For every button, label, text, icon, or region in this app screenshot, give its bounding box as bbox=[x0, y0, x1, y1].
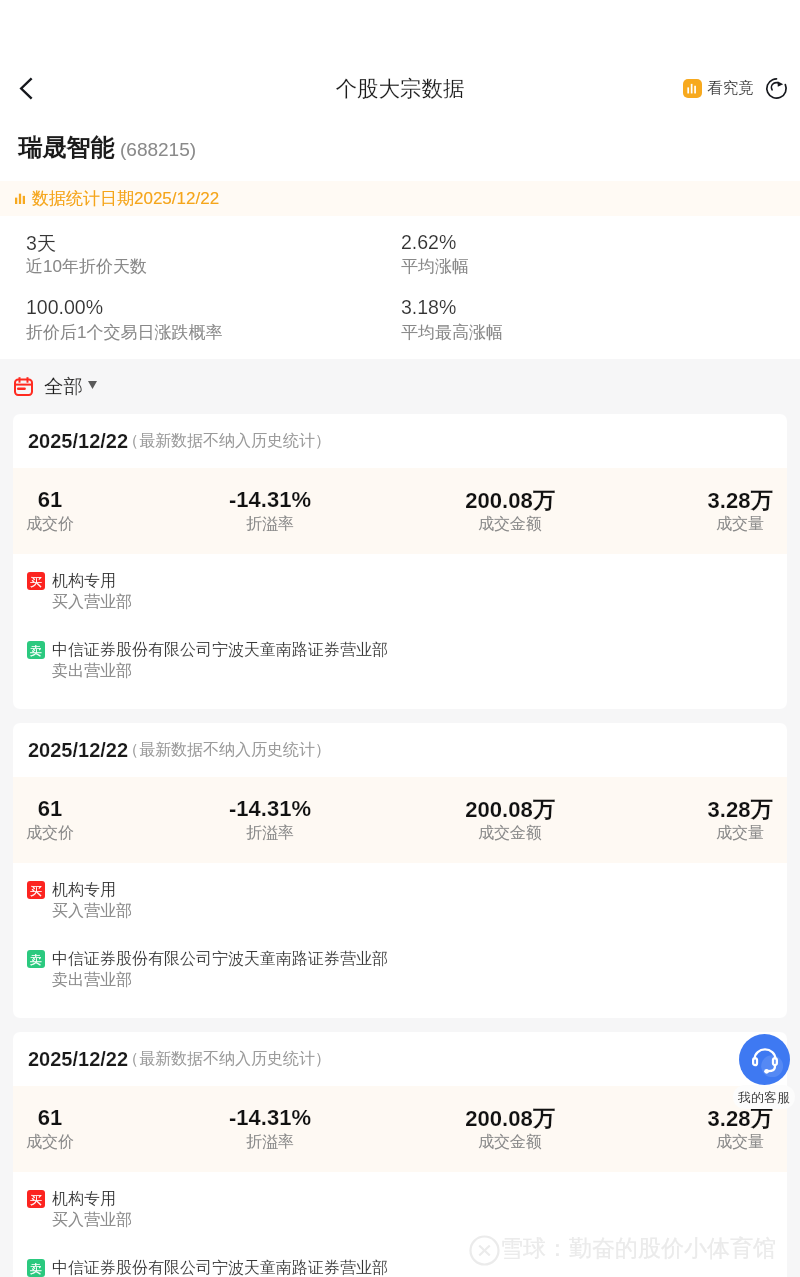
staticText: 买入营业部 bbox=[52, 901, 132, 921]
staticText: 买 bbox=[30, 574, 42, 589]
staticText: 买 bbox=[30, 1192, 42, 1207]
staticText: 全部 bbox=[44, 374, 83, 399]
button[interactable]: 我的客服 bbox=[733, 1085, 795, 1109]
staticText: 买入营业部 bbox=[52, 592, 132, 612]
staticText: 成交价 bbox=[13, 823, 150, 843]
staticText: 100.00% bbox=[26, 296, 103, 318]
staticText: 数据统计日期2025/12/22 bbox=[32, 188, 220, 209]
button[interactable]: 全部 bbox=[0, 359, 800, 414]
staticText: 成交量 bbox=[640, 1132, 787, 1152]
staticText: 卖出营业部 bbox=[52, 661, 132, 681]
staticText: 中信证券股份有限公司宁波天童南路证券营业部 bbox=[52, 949, 388, 969]
staticText: 2025/12/22 bbox=[28, 430, 129, 452]
staticText: 瑞晟智能 bbox=[18, 133, 114, 163]
staticText: 2025/12/22 bbox=[28, 739, 129, 761]
staticText: 成交价 bbox=[13, 514, 150, 534]
staticText: 折溢率 bbox=[170, 1132, 370, 1152]
button[interactable]: 2025/12/22 bbox=[13, 414, 787, 709]
staticText: 雪球：勤奋的股价小体育馆 bbox=[500, 1234, 776, 1263]
staticText: 折溢率 bbox=[170, 514, 370, 534]
staticText: 折价后1个交易日涨跌概率 bbox=[26, 322, 223, 343]
staticText: 200.08万 bbox=[410, 1105, 610, 1133]
staticText: 3天 bbox=[26, 231, 57, 256]
staticText: 中信证券股份有限公司宁波天童南路证券营业部 bbox=[52, 1258, 388, 1277]
staticText: 买入营业部 bbox=[52, 1210, 132, 1230]
button[interactable]: 卖 bbox=[27, 945, 787, 992]
staticText: 平均最高涨幅 bbox=[401, 322, 503, 343]
staticText: 61 bbox=[13, 487, 150, 512]
button[interactable]: 买 bbox=[27, 876, 787, 923]
button[interactable]: 我的客服 bbox=[739, 1034, 790, 1085]
staticText: （最新数据不纳入历史统计） bbox=[123, 1049, 331, 1069]
button[interactable]: 2025/12/22 bbox=[13, 1032, 787, 1277]
staticText: 成交金额 bbox=[410, 823, 610, 843]
staticText: 卖 bbox=[30, 952, 42, 967]
staticText: 成交价 bbox=[13, 1132, 150, 1152]
staticText: 卖出营业部 bbox=[52, 970, 132, 990]
staticText: 机构专用 bbox=[52, 880, 116, 900]
staticText: 3.18% bbox=[401, 296, 457, 318]
button[interactable]: 买 bbox=[27, 1185, 787, 1232]
staticText: (688215) bbox=[120, 139, 197, 160]
staticText: 200.08万 bbox=[410, 796, 610, 824]
staticText: （最新数据不纳入历史统计） bbox=[123, 431, 331, 451]
staticText: 61 bbox=[13, 1105, 150, 1130]
staticText: 3.28万 bbox=[640, 796, 787, 824]
staticText: 机构专用 bbox=[52, 571, 116, 591]
staticText: 平均涨幅 bbox=[401, 256, 469, 277]
button[interactable]: 看究竟 bbox=[683, 78, 754, 98]
staticText: 机构专用 bbox=[52, 1189, 116, 1209]
button[interactable]: Back bbox=[0, 62, 52, 114]
staticText: 成交量 bbox=[640, 823, 787, 843]
staticText: 看究竟 bbox=[707, 78, 754, 98]
staticText: 200.08万 bbox=[410, 487, 610, 515]
staticText: 个股大宗数据 bbox=[0, 75, 800, 102]
staticText: 成交量 bbox=[640, 514, 787, 534]
staticText: 3.28万 bbox=[640, 487, 787, 515]
staticText: -14.31% bbox=[170, 796, 370, 821]
staticText: 我的客服 bbox=[738, 1089, 790, 1105]
button[interactable]: 卖 bbox=[27, 636, 787, 683]
button[interactable]: Refresh bbox=[762, 74, 790, 102]
staticText: 61 bbox=[13, 796, 150, 821]
staticText: 2.62% bbox=[401, 231, 457, 253]
staticText: 近10年折价天数 bbox=[26, 256, 147, 277]
button[interactable]: 买 bbox=[27, 567, 787, 614]
staticText: -14.31% bbox=[170, 1105, 370, 1130]
staticText: 折溢率 bbox=[170, 823, 370, 843]
staticText: 卖 bbox=[30, 1261, 42, 1276]
staticText: -14.31% bbox=[170, 487, 370, 512]
staticText: 2025/12/22 bbox=[28, 1048, 129, 1070]
staticText: 中信证券股份有限公司宁波天童南路证券营业部 bbox=[52, 640, 388, 660]
staticText: 3.28万 bbox=[640, 1105, 787, 1133]
staticText: 成交金额 bbox=[410, 1132, 610, 1152]
staticText: 买 bbox=[30, 883, 42, 898]
staticText: 卖 bbox=[30, 643, 42, 658]
button[interactable]: 卖 bbox=[27, 1254, 787, 1277]
staticText: （最新数据不纳入历史统计） bbox=[123, 740, 331, 760]
button[interactable]: 2025/12/22 bbox=[13, 723, 787, 1018]
staticText: 成交金额 bbox=[410, 514, 610, 534]
